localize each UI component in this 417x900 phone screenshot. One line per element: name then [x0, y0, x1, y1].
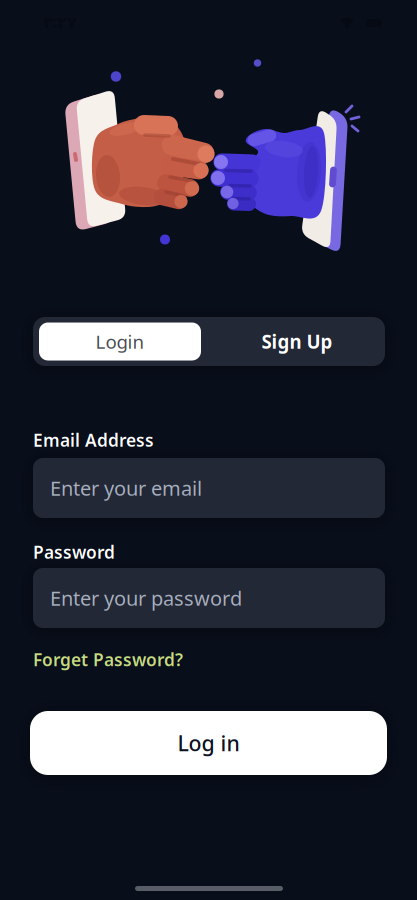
button[interactable]: Login: [39, 322, 201, 360]
staticText: Forget Password?: [33, 648, 183, 671]
button[interactable]: Enter your email: [33, 458, 385, 518]
staticText: Password: [33, 540, 115, 563]
button[interactable]: Enter your password: [33, 568, 385, 628]
staticText: Log in: [177, 729, 239, 757]
staticText: Login: [95, 329, 144, 354]
staticText: Sign Up: [261, 329, 332, 354]
staticText: Enter your email: [50, 475, 202, 501]
button[interactable]: Forget Password?: [33, 648, 183, 671]
button[interactable]: Sign Up: [201, 322, 379, 360]
button[interactable]: Log in: [30, 711, 387, 775]
staticText: Email Address: [33, 428, 154, 451]
staticText: Enter your password: [50, 585, 242, 611]
